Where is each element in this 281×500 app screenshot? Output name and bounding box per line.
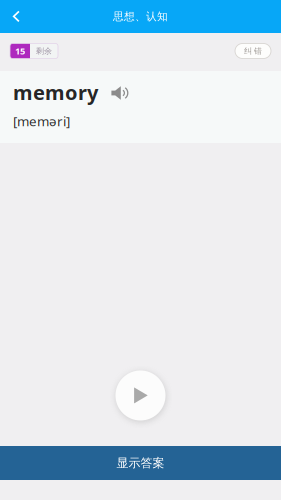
- staticText: 纠错: [244, 46, 262, 56]
- button[interactable]: 显示答案: [0, 446, 281, 480]
- staticText: memory: [13, 79, 98, 106]
- staticText: 剩余: [36, 46, 52, 56]
- staticText: 显示答案: [116, 456, 164, 470]
- staticText: 思想、认知: [113, 10, 168, 23]
- button[interactable]: Back: [0, 0, 33, 33]
- button[interactable]: Pronounce word: [109, 79, 132, 100]
- button[interactable]: Play audio: [115, 370, 166, 421]
- staticText: 15: [15, 45, 25, 57]
- staticText: [meməri]: [13, 112, 70, 130]
- button[interactable]: 纠错: [235, 43, 271, 58]
